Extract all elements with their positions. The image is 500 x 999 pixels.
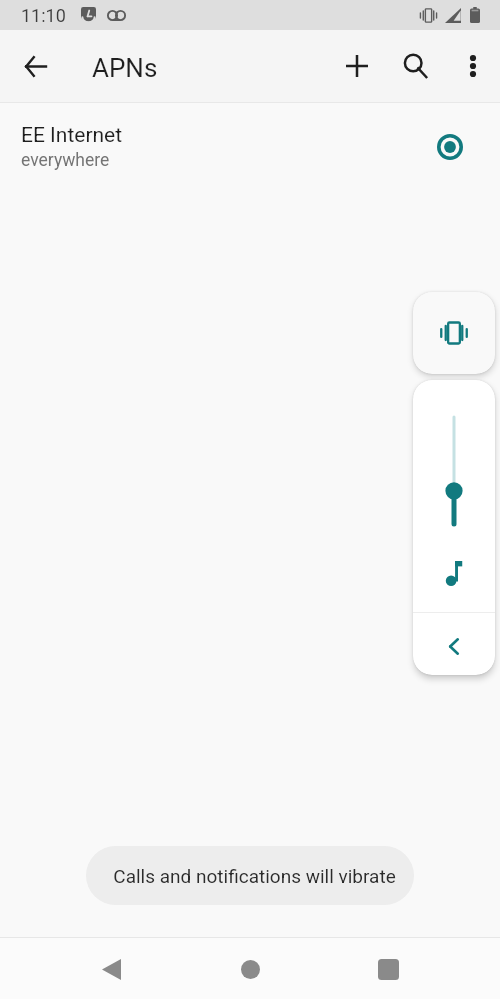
staticText: 11:10 [21,5,66,26]
button[interactable]: Add [333,42,381,90]
button[interactable]: Ringer mode vibrate [413,292,495,374]
staticText: EE Internet [21,123,123,148]
button[interactable]: Back [83,941,139,997]
staticText: Calls and notifications will vibrate [113,865,396,887]
button[interactable]: Back [13,44,58,89]
button[interactable]: Calls and notifications will vibrate [86,846,414,905]
button[interactable]: Media volume [413,380,495,612]
button[interactable]: More options [449,42,497,90]
button[interactable]: EE Internet [0,103,500,191]
button[interactable]: Recent apps [360,941,416,997]
staticText: APNs [92,53,158,83]
button[interactable]: Home [222,941,278,997]
button[interactable]: Expand [413,613,495,675]
button[interactable]: Search [391,42,439,90]
staticText: everywhere [21,150,110,171]
